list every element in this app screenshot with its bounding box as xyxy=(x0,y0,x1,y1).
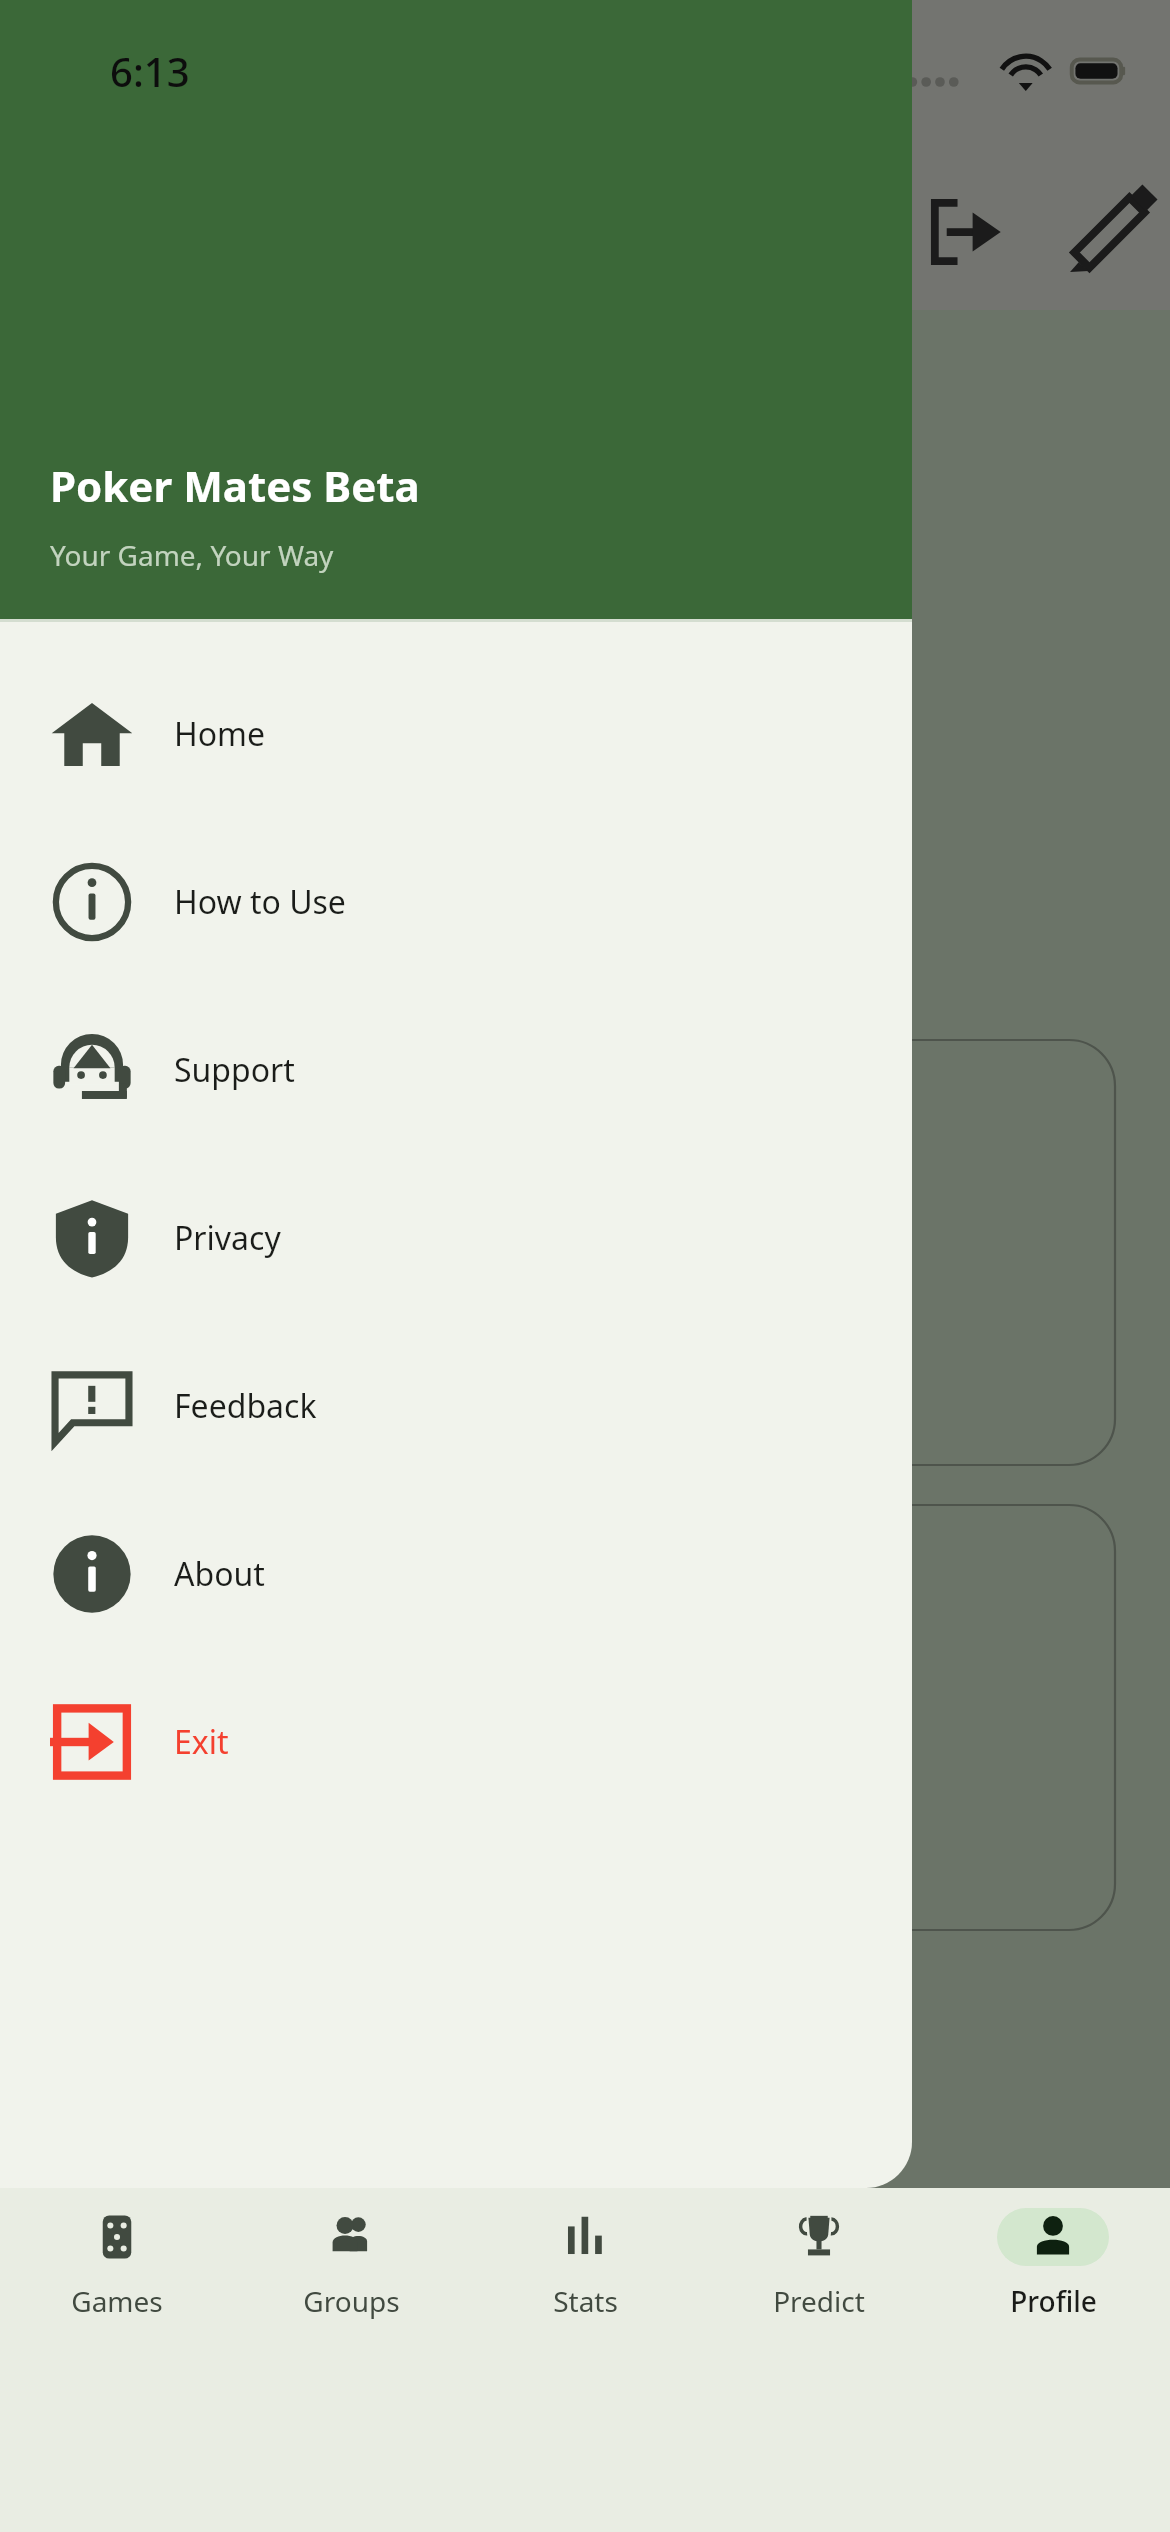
button[interactable]: Exit xyxy=(0,1658,912,1826)
button[interactable]: Privacy xyxy=(0,1154,912,1322)
staticText: 6:13 xyxy=(110,44,190,98)
staticText: Stats xyxy=(553,2282,618,2320)
button[interactable]: Profile xyxy=(936,2188,1170,2532)
staticText: How to Use xyxy=(174,880,346,924)
staticText: Predict xyxy=(773,2282,865,2320)
button[interactable]: Feedback xyxy=(0,1322,912,1490)
button[interactable]: Home xyxy=(0,650,912,818)
staticText: Your Game, Your Way xyxy=(50,536,334,574)
staticText: Profile xyxy=(1010,2282,1097,2320)
staticText: Games xyxy=(71,2282,163,2320)
staticText: Privacy xyxy=(174,1216,281,1260)
button[interactable]: How to Use xyxy=(0,818,912,986)
staticText: About xyxy=(174,1552,265,1596)
staticText: Feedback xyxy=(174,1384,317,1428)
button[interactable]: About xyxy=(0,1490,912,1658)
staticText: Support xyxy=(174,1048,295,1092)
staticText: Poker Mates Beta xyxy=(50,457,420,514)
button[interactable]: Games xyxy=(0,2188,234,2532)
staticText: Groups xyxy=(303,2282,400,2320)
button[interactable]: Support xyxy=(0,986,912,1154)
staticText: Exit xyxy=(174,1720,229,1764)
button[interactable]: Logout xyxy=(910,178,1018,286)
button[interactable]: Predict xyxy=(702,2188,936,2532)
button[interactable]: Edit xyxy=(1056,178,1164,286)
button[interactable]: Groups xyxy=(234,2188,468,2532)
staticText: Home xyxy=(174,712,266,756)
button[interactable]: Stats xyxy=(468,2188,702,2532)
